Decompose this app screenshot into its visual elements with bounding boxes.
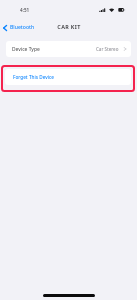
staticText: Device Type [12,46,40,53]
button[interactable]: Device Type [6,41,131,57]
staticText: 4:51 [20,7,30,13]
staticText: CAR KIT [57,23,81,30]
button[interactable]: Back [1,22,37,33]
other: Back [3,25,7,31]
staticText: Forget This Device [13,74,54,80]
button[interactable]: Forget This Device [5,69,131,85]
staticText: Car Stereo [96,46,119,52]
staticText: Bluetooth [10,24,35,31]
